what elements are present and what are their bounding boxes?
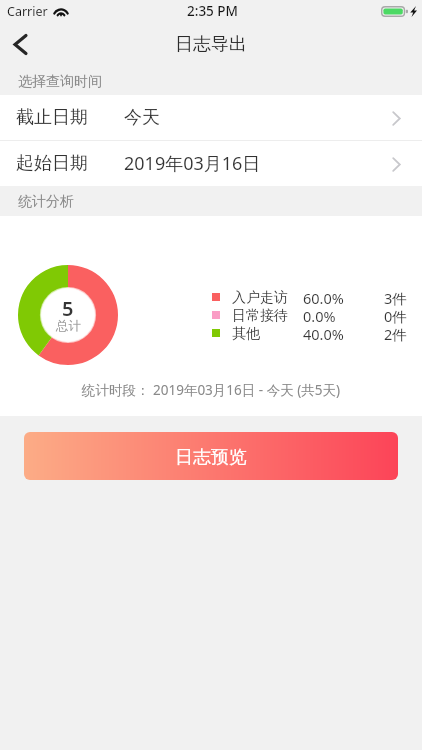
- staticText: 60.0%: [303, 288, 344, 306]
- staticText: 40.0%: [303, 324, 344, 342]
- button[interactable]: 起始日期: [0, 141, 422, 186]
- button[interactable]: Back: [0, 22, 41, 66]
- staticText: 2:35 PM: [187, 2, 238, 20]
- staticText: 总计: [56, 318, 81, 334]
- staticText: 日志导出: [175, 33, 247, 56]
- staticText: 0.0%: [303, 306, 336, 324]
- staticText: 0件: [384, 306, 407, 324]
- staticText: Carrier: [7, 3, 48, 20]
- staticText: 日志预览: [175, 446, 247, 469]
- staticText: 3件: [384, 288, 407, 306]
- button[interactable]: 截止日期: [0, 95, 422, 140]
- staticText: 统计时段： 2019年03月16日 - 今天 (共5天): [82, 381, 340, 399]
- staticText: 日常接待: [232, 307, 288, 325]
- staticText: 2件: [384, 324, 407, 342]
- staticText: 统计分析: [18, 193, 74, 211]
- staticText: 入户走访: [232, 289, 288, 307]
- staticText: 起始日期: [16, 152, 88, 175]
- staticText: 截止日期: [16, 106, 88, 129]
- staticText: 5: [62, 295, 74, 322]
- staticText: 选择查询时间: [18, 73, 102, 91]
- staticText: 今天: [124, 106, 160, 129]
- button[interactable]: 日志预览: [24, 432, 398, 480]
- staticText: 2019年03月16日: [124, 151, 261, 176]
- staticText: 其他: [232, 325, 260, 343]
